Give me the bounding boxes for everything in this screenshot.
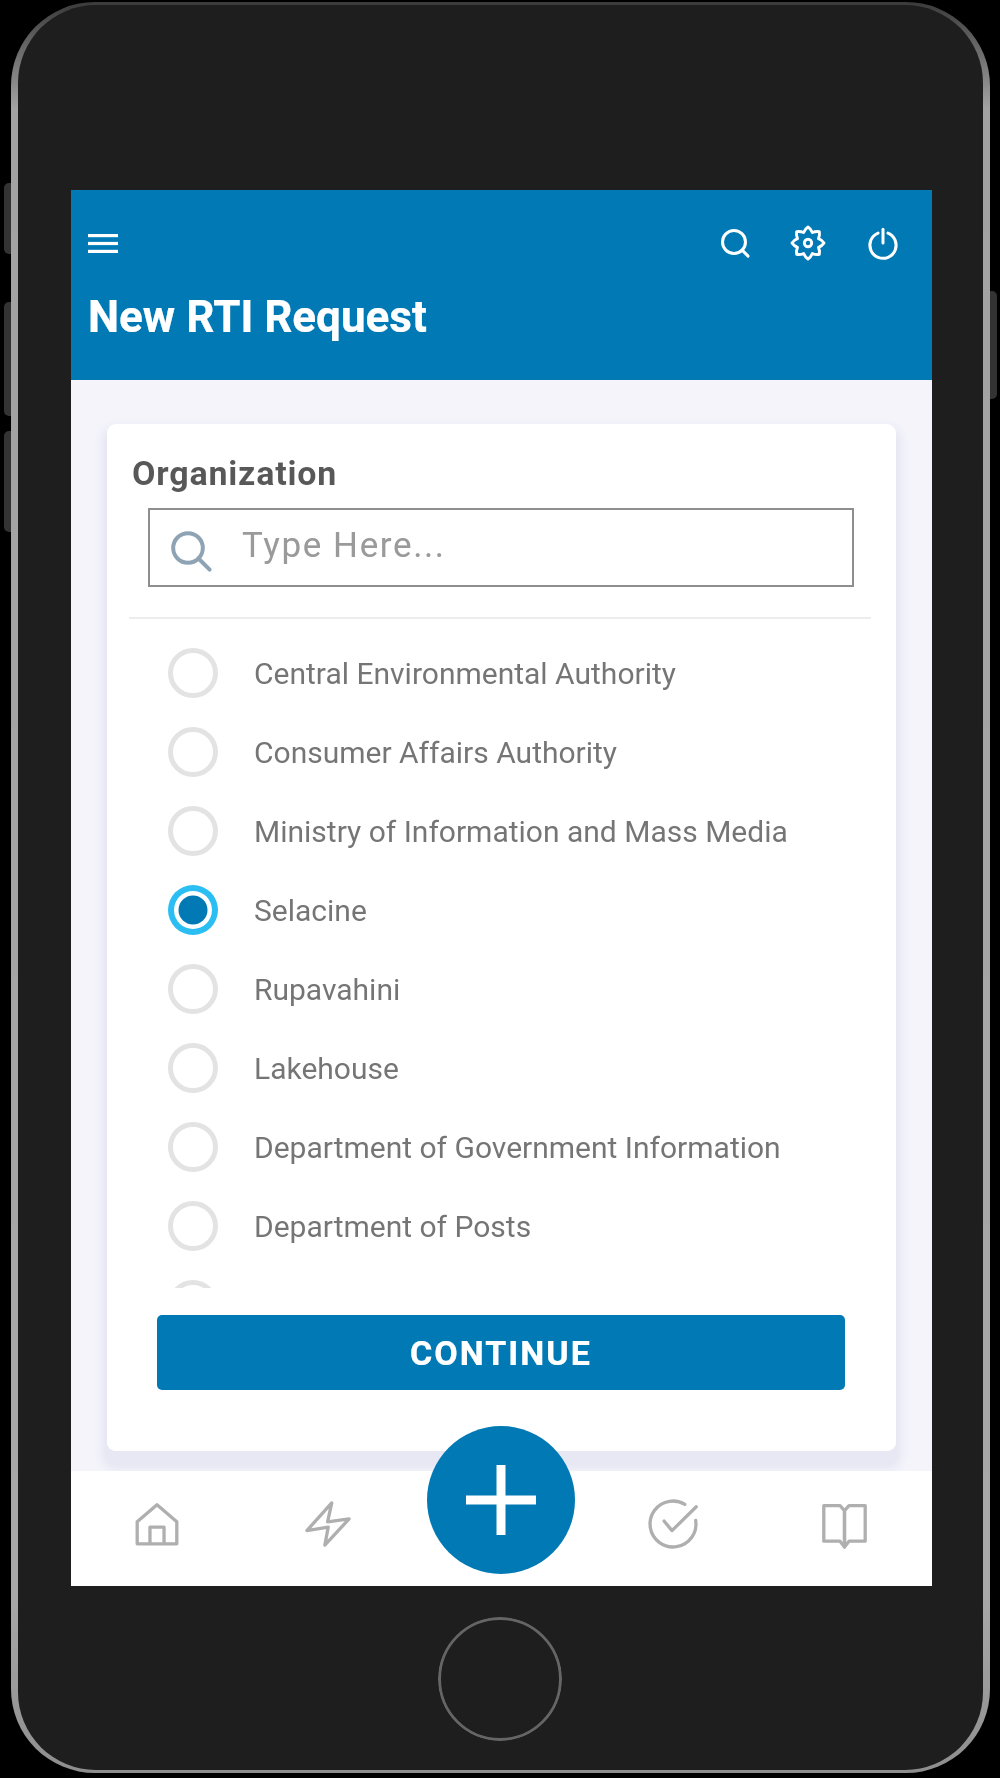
button[interactable]: Flash xyxy=(284,1480,372,1568)
button[interactable]: Rupavahini xyxy=(107,950,896,1028)
button[interactable]: CONTINUE xyxy=(157,1315,845,1390)
staticText: Department of Government Information xyxy=(254,1130,781,1165)
staticText: Ministry of Information and Mass Media xyxy=(254,814,788,849)
staticText: Rupavahini xyxy=(254,972,401,1007)
staticText: New RTI Request xyxy=(88,291,427,343)
staticText: Lakehouse xyxy=(254,1051,399,1086)
button[interactable]: Type Here... xyxy=(148,508,854,587)
button[interactable]: Power xyxy=(852,211,914,273)
button[interactable]: Open navigation menu xyxy=(72,212,134,274)
button[interactable]: Library xyxy=(800,1480,888,1568)
staticText: Department of Posts xyxy=(254,1209,532,1244)
button[interactable]: Consumer Affairs Authority xyxy=(107,713,896,791)
button[interactable]: Settings xyxy=(777,212,839,274)
button[interactable]: Department of Government Information xyxy=(107,1108,896,1186)
staticText: Department of Motor Traffic xyxy=(254,1288,626,1323)
button[interactable]: Department of Motor Traffic xyxy=(107,1266,896,1344)
staticText: Selacine xyxy=(254,893,367,928)
staticText: Organization xyxy=(132,453,338,493)
button[interactable]: Search xyxy=(703,211,765,273)
button[interactable]: Ministry of Information and Mass Media xyxy=(107,792,896,870)
button[interactable]: Tasks xyxy=(629,1480,717,1568)
button[interactable]: Lakehouse xyxy=(107,1029,896,1107)
staticText: Type Here... xyxy=(242,525,446,566)
button[interactable]: Selacine xyxy=(107,871,896,949)
staticText: CONTINUE xyxy=(410,1333,592,1373)
staticText: Central Environmental Authority xyxy=(254,656,676,691)
button[interactable]: Home xyxy=(113,1480,201,1568)
button[interactable]: Department of Posts xyxy=(107,1187,896,1265)
staticText: Consumer Affairs Authority xyxy=(254,735,618,770)
button[interactable]: Central Environmental Authority xyxy=(107,634,896,712)
button[interactable]: Add new request xyxy=(427,1426,575,1574)
